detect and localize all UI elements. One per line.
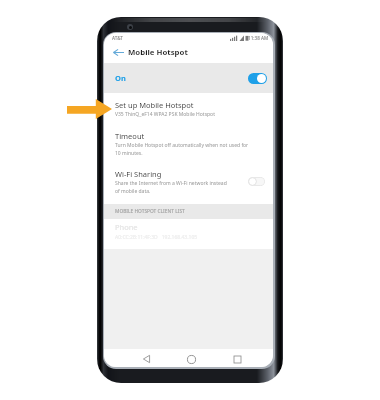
button[interactable]: Recent apps — [229, 351, 245, 367]
button[interactable]: Back — [138, 351, 154, 367]
staticText: A0:CC:2B:11:4F:3D 192.168.43.105 — [115, 234, 198, 241]
staticText: MOBILE HOTSPOT CLIENT LIST — [115, 208, 185, 215]
button[interactable]: Home — [183, 351, 199, 367]
staticText: V35 ThinQ_eF14 WPA2 PSK Mobile Hotspot — [115, 111, 215, 118]
staticText: Turn Mobile Hotspot off automatically wh… — [115, 142, 249, 156]
staticText: Set up Mobile Hotspot — [115, 100, 194, 110]
staticText: Mobile Hotspot — [128, 47, 188, 58]
staticText: Timeout — [115, 131, 145, 141]
button[interactable]: Set up Mobile Hotspot — [104, 95, 273, 125]
staticText: 11:38 AM — [248, 35, 269, 41]
button[interactable]: Wi-Fi Sharing off — [248, 177, 265, 186]
button[interactable]: Timeout — [104, 126, 273, 164]
staticText: Share the Internet from a Wi-Fi network … — [115, 180, 227, 194]
button[interactable]: On — [104, 63, 273, 93]
button[interactable]: Wi-Fi Sharing — [104, 164, 273, 201]
button[interactable]: Navigate up — [109, 45, 127, 60]
staticText: On — [115, 73, 126, 83]
staticText: Phone — [115, 222, 138, 232]
staticText: Wi-Fi Sharing — [115, 169, 162, 179]
button[interactable]: Mobile Hotspot on — [248, 73, 267, 84]
button[interactable]: Phone — [115, 222, 198, 241]
staticText: AT&T — [112, 35, 123, 41]
